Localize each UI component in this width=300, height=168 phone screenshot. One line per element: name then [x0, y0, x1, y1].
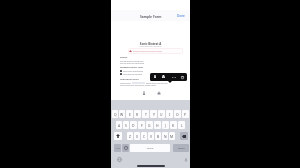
button[interactable]: G	[146, 121, 153, 129]
staticText: SAMPLE	[120, 56, 128, 59]
staticText: it was transferred to the secondary stor…	[120, 84, 157, 86]
staticText: R	[136, 112, 139, 117]
staticText: Describe where the sample came	[120, 60, 144, 62]
staticText: Sonic Biotest A	[111, 42, 190, 46]
staticText: L	[181, 123, 183, 128]
staticText: return	[178, 147, 185, 150]
staticText: C	[143, 134, 146, 139]
button[interactable]: P	[182, 110, 189, 118]
button[interactable]: C	[141, 132, 147, 140]
staticText: Signal weak but detectable	[123, 73, 142, 75]
button[interactable]: Delete	[178, 73, 187, 81]
staticText: A	[162, 74, 165, 80]
button[interactable]: K	[170, 121, 177, 129]
staticText: 3 required questions still need an answe…	[133, 50, 162, 52]
staticText: M	[170, 134, 174, 139]
button[interactable]: Change keyboard	[116, 156, 123, 163]
button[interactable]: M	[169, 132, 175, 140]
button[interactable]: B	[155, 132, 161, 140]
button[interactable]: I	[166, 110, 173, 118]
button[interactable]: space	[130, 144, 170, 152]
staticText: J	[165, 123, 166, 128]
staticText: I	[169, 112, 171, 117]
staticText: X	[136, 134, 138, 139]
button[interactable]: R	[134, 110, 141, 118]
button[interactable]: J	[162, 121, 169, 129]
staticText: 123	[116, 147, 120, 150]
staticText: G	[148, 123, 151, 128]
button[interactable]: Emoji	[122, 144, 129, 152]
staticText: space	[147, 147, 154, 150]
button[interactable]: X	[134, 132, 140, 140]
button[interactable]: Backspace	[180, 132, 188, 140]
staticText: A	[154, 75, 156, 79]
staticText: U	[160, 112, 163, 117]
button[interactable]: Z	[127, 132, 133, 140]
button[interactable]: Done	[173, 12, 190, 20]
staticText: K	[172, 123, 175, 128]
staticText: H	[156, 123, 159, 128]
button[interactable]: Shift	[114, 132, 122, 140]
button[interactable]: Emoji suggestion	[140, 89, 147, 96]
staticText: A	[118, 123, 121, 128]
staticText: N	[164, 134, 167, 139]
button[interactable]: 123	[114, 144, 121, 152]
button[interactable]: Y	[150, 110, 157, 118]
staticText: ADDITIONAL NOTES	[120, 78, 139, 81]
staticText: V	[150, 134, 153, 139]
button[interactable]: N	[162, 132, 168, 140]
staticText: F	[141, 123, 143, 128]
button[interactable]: Dictate	[182, 156, 189, 163]
staticText: D	[132, 123, 135, 128]
button[interactable]: E	[126, 110, 133, 118]
button[interactable]: W	[119, 110, 125, 118]
staticText: O	[176, 112, 179, 117]
staticText: All fields marked with * are required	[111, 46, 190, 48]
staticText: slightly warm to the touch and	[146, 82, 168, 84]
staticText: Sample Form	[140, 14, 162, 18]
staticText: B	[157, 134, 160, 139]
staticText: W	[120, 112, 124, 117]
staticText: OBSERVED SIGNAL LEVEL	[120, 66, 144, 69]
staticText: Z	[129, 134, 131, 139]
button[interactable]: Sticker suggestion	[155, 89, 162, 96]
button[interactable]: T	[142, 110, 149, 118]
staticText: Done	[177, 14, 185, 18]
button[interactable]: Q	[112, 110, 118, 118]
button[interactable]: return	[173, 144, 189, 152]
button[interactable]: L	[178, 121, 185, 129]
button[interactable]: More options	[169, 73, 178, 81]
button[interactable]: A	[116, 121, 122, 129]
button[interactable]: Increase text size	[159, 73, 168, 81]
staticText: E	[129, 112, 131, 117]
button[interactable]: O	[174, 110, 181, 118]
staticText: S	[125, 123, 127, 128]
button[interactable]: F	[138, 121, 145, 129]
staticText: T	[145, 112, 147, 117]
staticText: Y	[153, 112, 155, 117]
button[interactable]: Decrease text size	[150, 73, 159, 81]
staticText: P	[184, 112, 187, 117]
staticText: from and how it was stored below.	[120, 62, 145, 64]
staticText: Signal clearly above baseline	[123, 70, 144, 72]
button[interactable]: S	[123, 121, 129, 129]
staticText: Q	[114, 112, 117, 117]
button[interactable]: D	[130, 121, 137, 129]
button[interactable]: V	[148, 132, 154, 140]
button[interactable]: U	[158, 110, 165, 118]
staticText: Sample arrived	[120, 82, 131, 84]
button[interactable]: H	[154, 121, 161, 129]
